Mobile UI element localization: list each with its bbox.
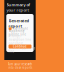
staticText: your report	[6, 7, 29, 13]
staticText: Generated report	[8, 18, 29, 29]
staticText: Summary of	[6, 2, 29, 7]
staticText: Continue	[13, 45, 27, 48]
button[interactable]: Continue	[8, 44, 31, 48]
staticText: Second supporting line	[8, 46, 35, 53]
staticText: Key insight	[13, 27, 28, 30]
staticText: Turn your research	[7, 62, 32, 66]
staticText: A longer description line goes here	[8, 34, 31, 45]
staticText: Supporting subtitle line	[8, 29, 26, 36]
staticText: into clear reports	[8, 66, 32, 69]
